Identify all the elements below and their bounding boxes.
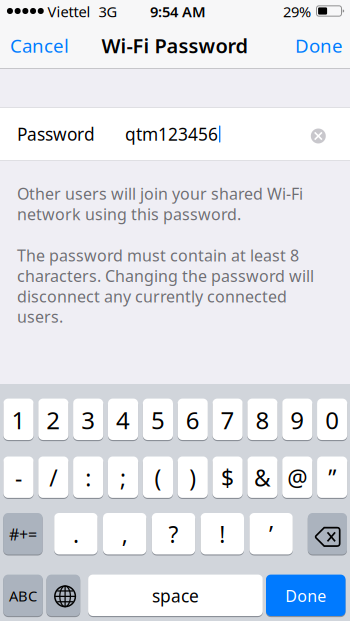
button[interactable]: ABC — [3, 575, 43, 617]
button[interactable]: . — [54, 513, 98, 555]
staticText: 0 — [325, 404, 339, 436]
button[interactable]: / — [38, 456, 68, 499]
staticText: @ — [287, 463, 307, 493]
button[interactable]: $ — [212, 456, 243, 499]
staticText: Cancel — [10, 33, 69, 58]
button[interactable]: 5 — [143, 399, 173, 441]
staticText: ( — [154, 463, 161, 493]
button[interactable]: Delete — [308, 513, 347, 555]
button[interactable]: space — [88, 575, 263, 617]
staticText: qtm123456 — [125, 122, 218, 145]
staticText: 29% — [283, 2, 311, 21]
staticText: Other users will join your shared Wi-Fi … — [17, 183, 303, 225]
staticText: Done — [285, 585, 326, 606]
button[interactable]: ” — [317, 456, 347, 499]
staticText: ! — [219, 519, 225, 549]
staticText: & — [254, 463, 271, 493]
button[interactable]: Done — [281, 22, 350, 69]
staticText: 5 — [151, 404, 165, 436]
staticText: 6 — [186, 404, 200, 436]
staticText: 2 — [46, 404, 60, 436]
staticText: : — [85, 463, 91, 493]
staticText: Password — [17, 122, 95, 145]
button[interactable]: ! — [201, 513, 244, 555]
button[interactable]: 0 — [317, 399, 347, 441]
button[interactable]: 3 — [73, 399, 103, 441]
button[interactable]: @ — [282, 456, 312, 499]
button[interactable]: 7 — [212, 399, 243, 441]
button[interactable]: 9 — [282, 399, 312, 441]
staticText: Wi-Fi Password — [101, 32, 248, 59]
button[interactable]: , — [103, 513, 146, 555]
button[interactable]: 2 — [38, 399, 68, 441]
button[interactable]: Clear text — [305, 122, 332, 149]
button[interactable]: 6 — [178, 399, 208, 441]
staticText: , — [122, 519, 128, 549]
staticText: 7 — [221, 404, 235, 436]
staticText: 1 — [11, 404, 25, 436]
button[interactable]: ) — [178, 456, 208, 499]
button[interactable]: Next keyboard — [46, 575, 80, 617]
staticText: ” — [328, 463, 336, 493]
staticText: ; — [120, 463, 126, 493]
button[interactable]: Cancel — [0, 22, 83, 69]
button[interactable]: ( — [143, 456, 173, 499]
staticText: 9:54 AM — [150, 2, 206, 21]
button[interactable]: 8 — [247, 399, 278, 441]
staticText: ’ — [269, 519, 273, 549]
staticText: Done — [295, 33, 343, 58]
staticText: - — [15, 463, 22, 493]
button[interactable]: ? — [152, 513, 195, 555]
staticText: 4 — [116, 404, 130, 436]
button[interactable]: 1 — [3, 399, 34, 441]
button[interactable]: 4 — [108, 399, 138, 441]
staticText: 3 — [81, 404, 95, 436]
button[interactable]: ; — [108, 456, 138, 499]
staticText: ABC — [9, 586, 37, 606]
staticText: space — [152, 584, 199, 607]
staticText: Viettel — [47, 2, 90, 21]
staticText: . — [73, 519, 79, 549]
button[interactable]: ’ — [249, 513, 293, 555]
staticText: #+= — [9, 524, 37, 545]
button[interactable]: Done — [266, 575, 345, 617]
button[interactable]: - — [3, 456, 34, 499]
staticText: The password must contain at least 8 cha… — [17, 245, 314, 327]
button[interactable]: : — [73, 456, 103, 499]
staticText: / — [49, 463, 57, 493]
staticText: $ — [221, 463, 234, 493]
staticText: ) — [189, 463, 196, 493]
staticText: 3G — [98, 2, 117, 21]
staticText: ? — [168, 519, 178, 549]
button[interactable]: & — [247, 456, 278, 499]
staticText: 9 — [290, 404, 304, 436]
staticText: 8 — [255, 404, 269, 436]
button[interactable]: #+= — [3, 513, 43, 555]
